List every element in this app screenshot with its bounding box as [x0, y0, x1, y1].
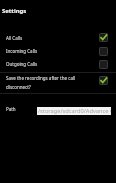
staticText: Path	[6, 106, 16, 112]
button[interactable]: Enable Incoming Calls	[99, 47, 108, 56]
staticText: All Calls	[6, 35, 98, 41]
staticText: Outgoing Calls	[6, 61, 98, 67]
button[interactable]: Disable Save the recordings after the ca…	[99, 76, 108, 85]
button[interactable]: /storage/sdcard0/Advance C	[37, 107, 111, 115]
button[interactable]: Outgoing Calls	[0, 56, 116, 69]
button[interactable]: Incoming Calls	[0, 42, 116, 55]
staticText: /storage/sdcard0/Advance C	[38, 107, 111, 115]
button[interactable]: Disable All Calls	[99, 33, 108, 42]
button[interactable]: Enable Outgoing Calls	[99, 60, 108, 69]
staticText: Save the recordings after the call disco…	[6, 75, 98, 90]
button[interactable]: All Calls	[0, 29, 116, 42]
staticText: Settings	[2, 7, 27, 15]
staticText: Incoming Calls	[6, 48, 98, 54]
button[interactable]: Save the recordings after the call disco…	[0, 73, 116, 92]
